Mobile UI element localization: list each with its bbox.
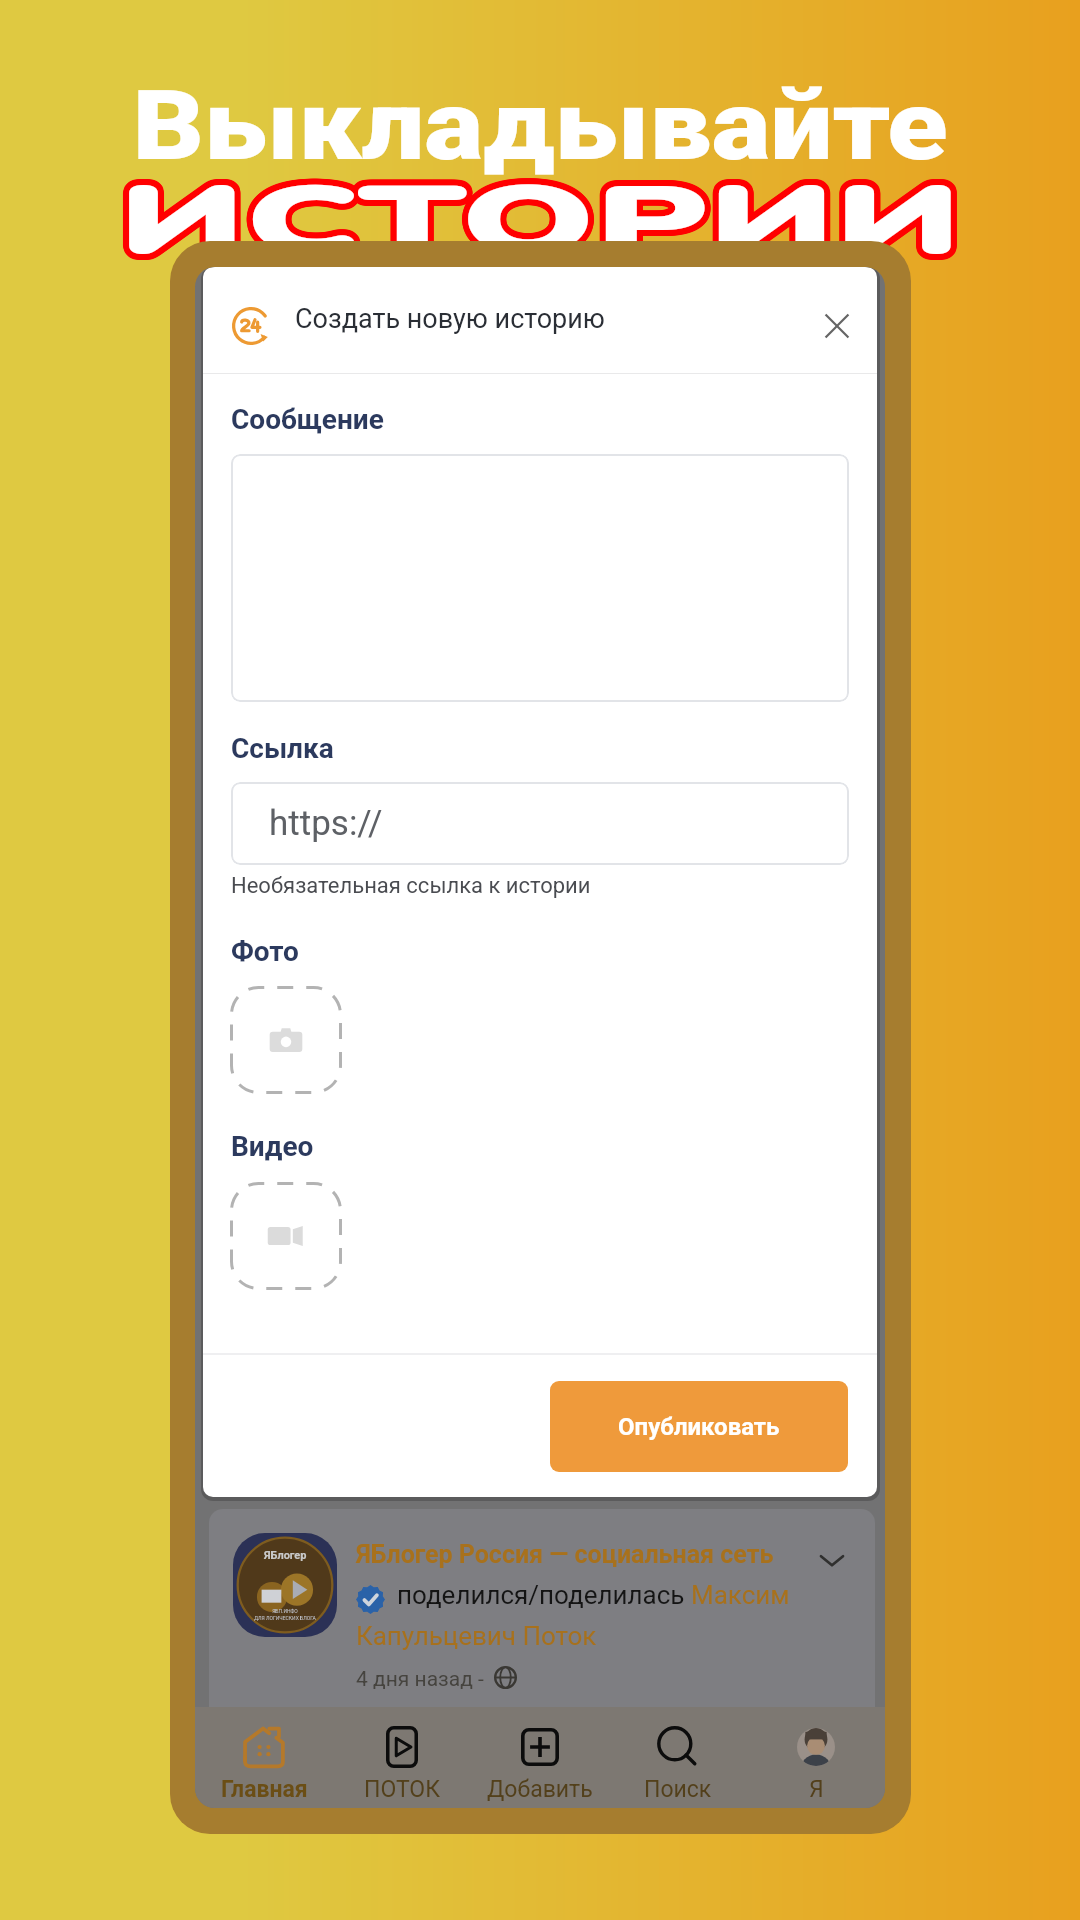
staticText: ИСТОРИИ <box>0 156 1080 286</box>
staticText: ИСТОРИИ <box>0 150 1080 280</box>
staticText: ИСТОРИИ <box>0 162 1080 292</box>
staticText: Видео <box>231 1130 314 1163</box>
button[interactable]: ЯБлогер <box>209 1509 875 1719</box>
staticText: Опубликовать <box>618 1413 780 1441</box>
staticText: ИСТОРИИ <box>0 152 1080 282</box>
staticText: Главная <box>221 1776 308 1803</box>
staticText: ИСТОРИИ <box>0 153 1080 283</box>
staticText: ИСТОРИИ <box>0 151 1080 281</box>
staticText: ИСТОРИИ <box>0 157 1080 287</box>
button[interactable]: Меню записи <box>813 1541 851 1579</box>
staticText: ИСТОРИИ <box>0 161 1080 291</box>
button[interactable] <box>231 454 849 702</box>
staticText: ЯБлогер <box>264 1549 307 1562</box>
staticText: ЯБЛ.ИНФО ДЛЯ ЛОГИЧЕСКИХ БЛОГА <box>254 1608 316 1621</box>
button[interactable]: Главная <box>195 1707 333 1808</box>
staticText: ИСТОРИИ <box>0 162 1080 292</box>
staticText: ИСТОРИИ <box>0 162 1080 292</box>
staticText: ИСТОРИИ <box>0 150 1080 280</box>
button[interactable]: Опубликовать <box>550 1381 848 1472</box>
staticText: Выкладывайте <box>0 70 1080 183</box>
staticText: ИСТОРИИ <box>0 162 1080 292</box>
staticText: ПОТОК <box>364 1776 440 1803</box>
staticText: 4 дня назад - <box>356 1667 484 1692</box>
button[interactable]: Добавить <box>471 1707 609 1808</box>
staticText: ИСТОРИИ <box>0 162 1080 292</box>
staticText: ИСТОРИИ <box>0 150 1080 280</box>
staticText: ИСТОРИИ <box>0 160 1080 290</box>
button[interactable] <box>231 782 849 865</box>
staticText: Добавить <box>487 1776 593 1803</box>
staticText: ИСТОРИИ <box>0 150 1080 280</box>
staticText: Поиск <box>644 1776 712 1803</box>
staticText: ИСТОРИИ <box>0 155 1080 285</box>
staticText: поделился/поделилась <box>397 1580 691 1610</box>
staticText: ЯБлогер Россия — социальная сеть <box>356 1540 774 1569</box>
button[interactable]: Я <box>747 1707 885 1808</box>
button[interactable]: ПОТОК <box>333 1707 471 1808</box>
staticText: ИСТОРИИ <box>0 151 1080 281</box>
button[interactable]: Поиск <box>609 1707 747 1808</box>
staticText: ИСТОРИИ <box>0 157 1080 287</box>
staticText: Я <box>809 1776 824 1803</box>
staticText: ИСТОРИИ <box>0 156 1080 286</box>
staticText: Ссылка <box>231 732 334 765</box>
staticText: Максим <box>691 1580 790 1610</box>
staticText: ИСТОРИИ <box>0 152 1080 282</box>
staticText: Капульцевич Поток <box>356 1621 597 1651</box>
staticText: Необязательная ссылка к истории <box>231 873 591 899</box>
button[interactable]: Добавить медиа <box>230 1182 342 1290</box>
staticText: Сообщение <box>231 403 384 436</box>
staticText: ИСТОРИИ <box>0 153 1080 283</box>
staticText: ИСТОРИИ <box>0 159 1080 289</box>
staticText: Фото <box>231 935 299 968</box>
staticText: ИСТОРИИ <box>0 159 1080 289</box>
staticText: ИСТОРИИ <box>0 160 1080 290</box>
staticText: ИСТОРИИ <box>0 155 1080 285</box>
staticText: https:// <box>269 803 383 844</box>
staticText: ИСТОРИИ <box>0 156 1080 286</box>
staticText: Создать новую историю <box>295 303 605 335</box>
button[interactable]: Добавить медиа <box>230 986 342 1094</box>
staticText: ИСТОРИИ <box>0 161 1080 291</box>
staticText: ИСТОРИИ <box>0 150 1080 280</box>
button[interactable]: Закрыть <box>812 301 861 350</box>
